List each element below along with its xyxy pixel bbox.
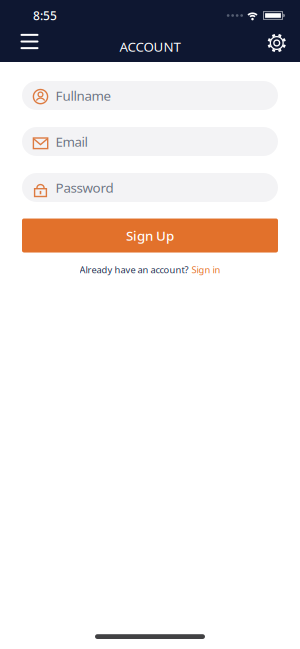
staticText: 8:55 — [33, 7, 57, 23]
staticText: Fullname — [55, 87, 111, 104]
button[interactable] — [0, 34, 38, 49]
button[interactable]: Password — [22, 173, 278, 202]
staticText: Sign Up — [126, 227, 174, 244]
button[interactable] — [267, 34, 300, 52]
staticText: Already have an account? — [79, 263, 188, 276]
button[interactable]: Sign Up — [22, 218, 278, 252]
staticText: Sign in — [191, 263, 220, 276]
staticText: Email — [55, 133, 87, 150]
staticText: ACCOUNT — [119, 38, 180, 55]
staticText: Password — [55, 179, 113, 196]
button[interactable]: Sign in — [191, 263, 220, 276]
button[interactable]: Fullname — [22, 81, 278, 110]
button[interactable]: Email — [22, 127, 278, 156]
